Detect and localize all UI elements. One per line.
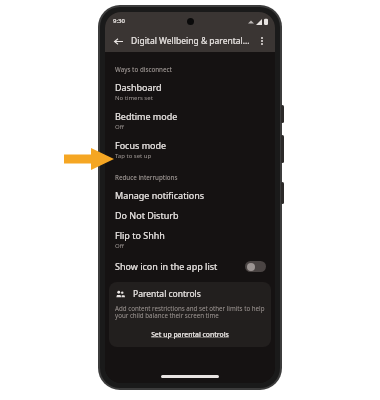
staticText: Show icon in the app list <box>115 260 245 272</box>
button[interactable]: Focus mode <box>105 135 275 164</box>
button[interactable]: Show icon in the app list <box>105 254 275 278</box>
staticText: Manage notifications <box>115 189 205 201</box>
button[interactable]: Back <box>110 33 126 49</box>
staticText: Ways to disconnect <box>115 65 275 73</box>
staticText: Off <box>115 242 124 250</box>
other: Parental controls <box>115 289 126 300</box>
button[interactable]: More options <box>254 33 270 49</box>
staticText: Dashboard <box>115 81 162 93</box>
staticText: Reduce interruptions <box>115 173 275 181</box>
button[interactable]: Flip to Shhh <box>105 225 275 254</box>
staticText: Parental controls <box>133 288 201 300</box>
staticText: Digital Wellbeing & parental co… <box>131 35 251 47</box>
staticText: No timers set <box>115 94 153 102</box>
staticText: Do Not Disturb <box>115 209 179 221</box>
staticText: Flip to Shhh <box>115 229 165 241</box>
button[interactable]: Bedtime mode <box>105 106 275 135</box>
button[interactable]: Manage notifications <box>105 185 275 205</box>
staticText: Tap to set up <box>115 152 152 160</box>
staticText: Off <box>115 123 124 131</box>
button[interactable]: Set up parental controls <box>145 328 235 341</box>
button[interactable]: Do Not Disturb <box>105 205 275 225</box>
staticText: Add content restrictions and set other l… <box>115 304 265 320</box>
staticText: 9:30 <box>113 17 125 25</box>
button[interactable]: Dashboard <box>105 77 275 106</box>
staticText: Bedtime mode <box>115 110 178 122</box>
staticText: Focus mode <box>115 139 167 151</box>
